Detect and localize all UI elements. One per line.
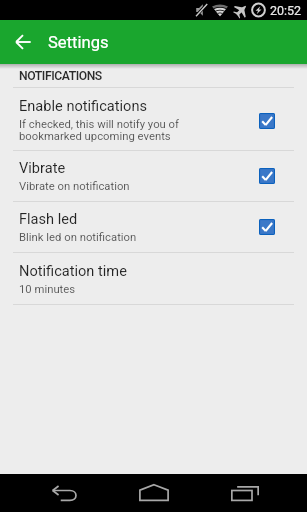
staticText: Settings — [48, 33, 109, 52]
button[interactable]: Enable notifications — [0, 88, 307, 150]
button[interactable]: Flash led — [259, 219, 275, 235]
staticText: Enable notifications — [19, 97, 148, 114]
staticText: 10 minutes — [19, 283, 76, 296]
staticText: Blink led on notification — [19, 231, 137, 244]
staticText: 20:52 — [270, 3, 302, 18]
staticText: NOTIFICATIONS — [19, 69, 102, 83]
button[interactable]: Navigate up — [7, 26, 39, 58]
staticText: If checked, this will notify you of book… — [19, 118, 179, 143]
button[interactable]: Recent apps — [215, 479, 275, 507]
button[interactable]: Flash led — [0, 202, 307, 252]
button[interactable]: Enable notifications — [259, 113, 275, 129]
button[interactable]: Back — [34, 479, 94, 507]
staticText: Notification time — [19, 262, 127, 279]
staticText: Vibrate on notification — [19, 180, 130, 193]
staticText: Vibrate — [19, 159, 66, 176]
staticText: Flash led — [19, 210, 78, 227]
button[interactable]: Vibrate — [0, 151, 307, 201]
button[interactable]: Notification time — [0, 253, 307, 304]
button[interactable]: Home — [124, 477, 184, 507]
button[interactable]: Vibrate — [259, 168, 275, 184]
